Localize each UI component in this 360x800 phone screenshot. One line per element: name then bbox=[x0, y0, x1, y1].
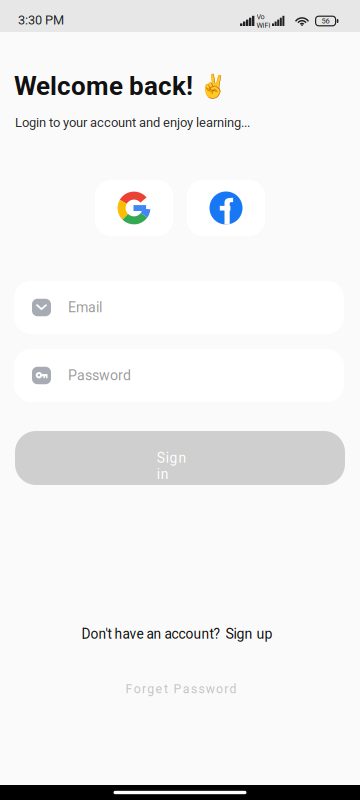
button[interactable]: Password bbox=[14, 349, 344, 402]
staticText: ✌️ bbox=[199, 73, 227, 100]
button[interactable]: Sign up bbox=[222, 626, 272, 642]
button[interactable]: Sign in with Facebook bbox=[187, 180, 265, 236]
staticText: Vo WiFi bbox=[256, 13, 270, 29]
staticText: Welcome back! bbox=[14, 71, 193, 101]
button[interactable]: Sign in bbox=[15, 431, 345, 485]
button[interactable]: Sign in with Google bbox=[95, 180, 173, 236]
staticText: Login to your account and enjoy learning… bbox=[15, 115, 250, 130]
staticText: Password bbox=[68, 367, 131, 384]
staticText: 3:30 PM bbox=[18, 12, 64, 27]
staticText: 56 bbox=[322, 17, 330, 25]
button[interactable]: Email bbox=[14, 281, 344, 334]
staticText: Don't have an account? bbox=[81, 626, 222, 642]
staticText: Sign up bbox=[225, 626, 272, 642]
staticText: Email bbox=[68, 299, 102, 316]
staticText: Sign in bbox=[157, 450, 203, 466]
staticText: Forget Password bbox=[125, 682, 237, 696]
button[interactable]: Forget Password bbox=[125, 682, 237, 696]
